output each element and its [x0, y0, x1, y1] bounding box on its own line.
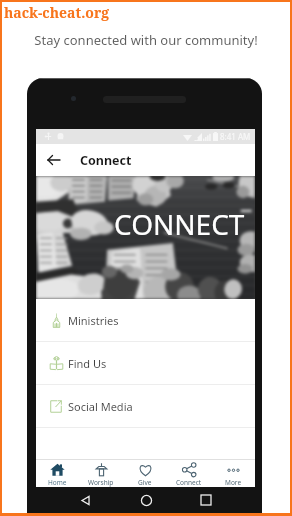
button[interactable]: Back — [74, 489, 96, 511]
button[interactable]: Social Media — [36, 385, 255, 428]
staticText: Ministries — [68, 313, 119, 328]
staticText: Social Media — [68, 399, 133, 414]
staticText: Connect — [80, 152, 132, 169]
staticText: Give — [138, 478, 152, 487]
staticText: Connect — [176, 478, 202, 487]
button[interactable]: Back — [40, 144, 68, 176]
staticText: Stay connected with our community! — [0, 31, 292, 49]
button[interactable]: Give — [123, 460, 167, 487]
button[interactable]: Connect — [167, 460, 211, 487]
staticText: hack-cheat.org — [4, 3, 110, 22]
button[interactable]: Ministries — [36, 299, 255, 342]
staticText: Find Us — [68, 356, 107, 371]
button[interactable]: Recents — [195, 489, 217, 511]
staticText: Home — [48, 478, 67, 487]
button[interactable]: Find Us — [36, 342, 255, 385]
button[interactable]: More — [211, 460, 255, 487]
staticText: CONNECT — [114, 205, 245, 243]
staticText: Worship — [88, 478, 114, 487]
staticText: 8:41 AM — [220, 131, 251, 142]
staticText: More — [225, 478, 242, 487]
button[interactable]: Home — [36, 460, 79, 487]
button[interactable]: Worship — [79, 460, 123, 487]
button[interactable]: Home — [135, 489, 157, 511]
